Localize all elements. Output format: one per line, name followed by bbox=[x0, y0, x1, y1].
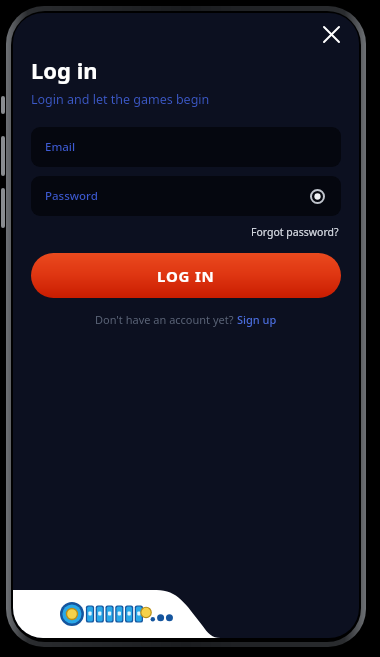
button[interactable]: LOG IN bbox=[31, 253, 341, 298]
staticText: Log in bbox=[31, 55, 98, 85]
button[interactable]: Sign up bbox=[237, 312, 277, 327]
staticText: Login and let the games begin bbox=[31, 91, 210, 108]
staticText: LOG IN bbox=[157, 266, 215, 286]
button[interactable]: Forgot password? bbox=[249, 223, 341, 241]
button[interactable]: Casinos.cc logo bbox=[59, 601, 165, 627]
button[interactable]: Close bbox=[315, 18, 347, 50]
staticText: Forgot password? bbox=[251, 225, 339, 239]
button[interactable]: Password bbox=[31, 176, 341, 216]
staticText: Password bbox=[45, 188, 98, 204]
staticText: Email bbox=[45, 139, 76, 155]
button[interactable]: Email bbox=[31, 127, 341, 167]
staticText: Don't have an account yet? bbox=[95, 312, 237, 327]
staticText: Sign up bbox=[237, 312, 277, 327]
button[interactable]: Show password bbox=[304, 183, 330, 209]
